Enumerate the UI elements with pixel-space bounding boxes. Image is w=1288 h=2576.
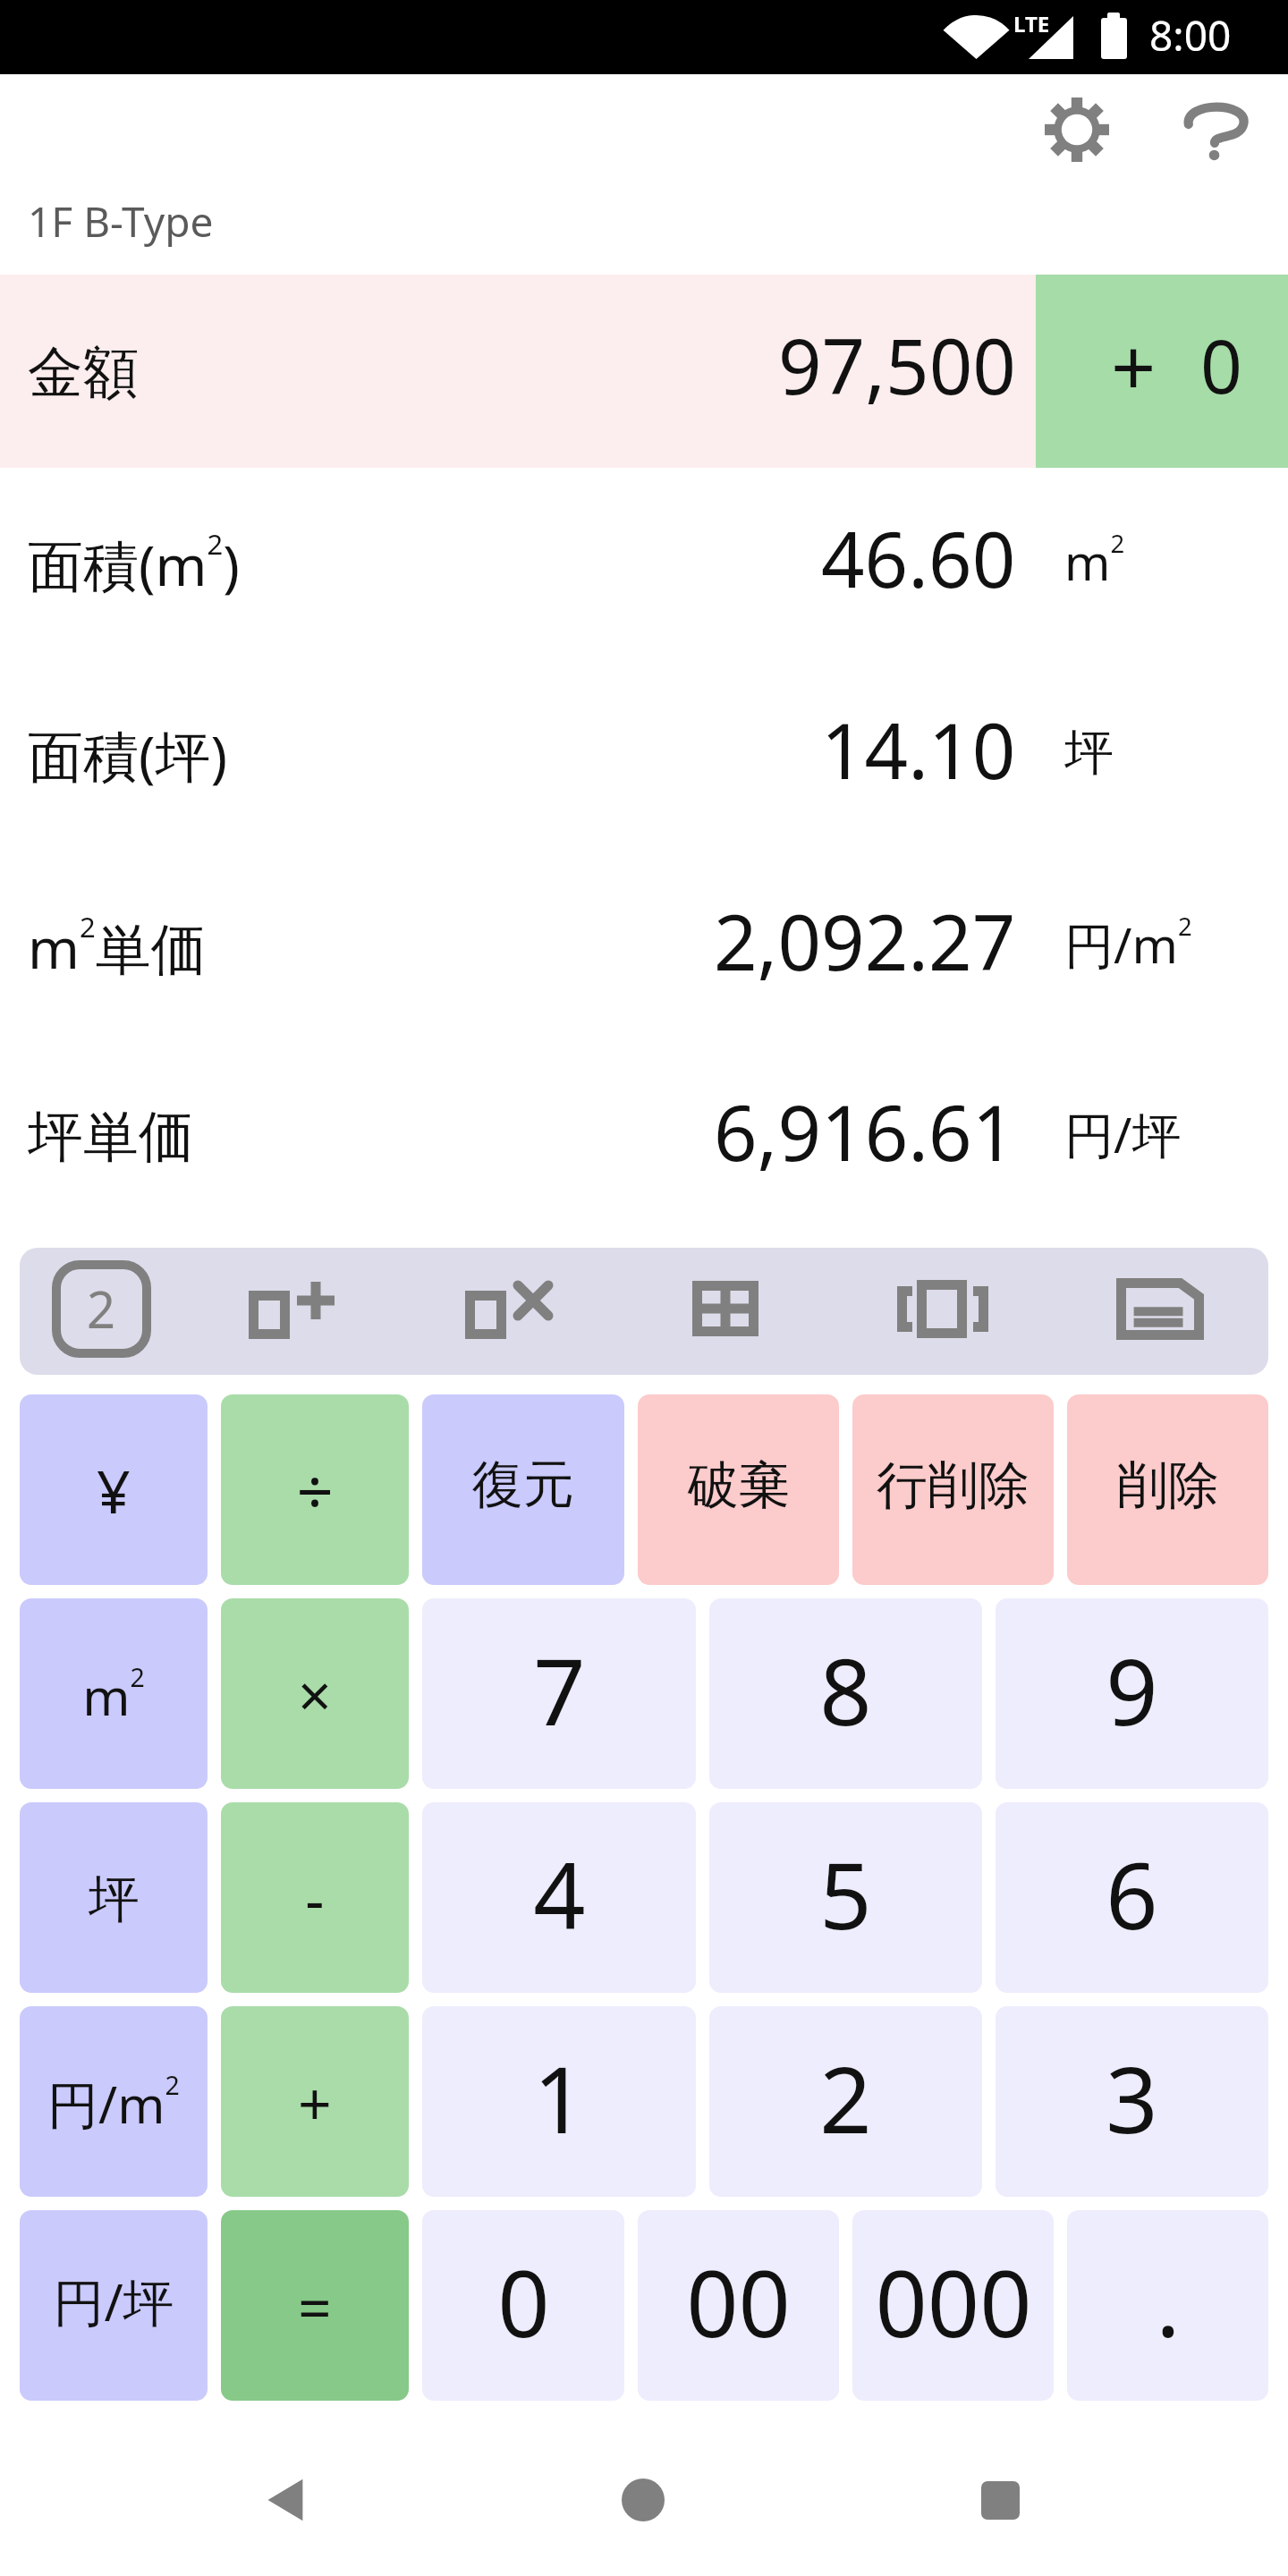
button[interactable]: Add page (183, 1248, 400, 1375)
staticText: 1 (533, 2036, 586, 2160)
staticText: m2単価 (28, 908, 207, 985)
button[interactable]: 8 (709, 1598, 982, 1789)
staticText: - (305, 1858, 325, 1938)
button[interactable]: 破棄 (638, 1394, 839, 1585)
staticText: LTE (1013, 9, 1050, 38)
staticText: 3 (1106, 2036, 1158, 2160)
staticText: 円/m2 (47, 2068, 180, 2139)
staticText: 14.10 (821, 698, 1016, 801)
staticText: 2 (819, 2036, 872, 2160)
button[interactable]: 1 (422, 2006, 696, 2197)
staticText: 000 (875, 2240, 1032, 2364)
staticText: 円/m2 (1064, 910, 1192, 978)
button[interactable]: 削除 (1067, 1394, 1268, 1585)
staticText: 1F B-Type (28, 193, 214, 250)
staticText: 6 (1106, 1832, 1158, 1956)
button[interactable]: 9 (996, 1598, 1268, 1789)
staticText: 破棄 (688, 1453, 790, 1518)
staticText: 6,916.61 (714, 1080, 1016, 1183)
button[interactable]: Help (1165, 74, 1264, 185)
button[interactable]: Home (580, 2415, 706, 2576)
button[interactable]: 3 (996, 2006, 1268, 2197)
staticText: 8:00 (1149, 7, 1232, 64)
button[interactable]: 4 (422, 1802, 696, 1993)
staticText: 削除 (1117, 1453, 1219, 1518)
button[interactable]: ¥ (20, 1394, 208, 1585)
button[interactable]: 円/m2 (20, 2006, 208, 2197)
staticText: m2 (82, 1660, 145, 1731)
button[interactable]: Back (225, 2415, 350, 2576)
button[interactable]: m2単価 (0, 851, 1288, 1041)
button[interactable]: ÷ (221, 1394, 409, 1585)
button[interactable]: m2 (20, 1598, 208, 1789)
staticText: 9 (1106, 1628, 1158, 1752)
button[interactable]: 行削除 (852, 1394, 1054, 1585)
button[interactable]: 6 (996, 1802, 1268, 1993)
button[interactable]: 2 (709, 2006, 982, 2197)
button[interactable]: 面積(m2) (0, 468, 1288, 659)
button[interactable]: = (221, 2210, 409, 2401)
button[interactable]: Page width (834, 1248, 1051, 1375)
staticText: = (298, 2266, 332, 2346)
button[interactable]: Recents (937, 2415, 1063, 2576)
button[interactable]: 00 (638, 2210, 839, 2401)
button[interactable]: + (221, 2006, 409, 2197)
staticText: 4 (533, 1832, 586, 1956)
button[interactable]: Delete page (400, 1248, 616, 1375)
staticText: 97,500 (778, 313, 1016, 417)
button[interactable]: 0 (422, 2210, 624, 2401)
button[interactable]: 7 (422, 1598, 696, 1789)
staticText: ¥ (97, 1450, 131, 1530)
staticText: + (298, 2062, 332, 2142)
staticText: 坪 (1064, 722, 1114, 784)
staticText: 復元 (472, 1453, 574, 1517)
button[interactable]: 円/坪 (20, 2210, 208, 2401)
button[interactable]: Grid view (616, 1248, 834, 1375)
button[interactable]: + (1036, 275, 1288, 468)
staticText: 0 (1200, 315, 1242, 415)
staticText: 2,092.27 (714, 889, 1016, 993)
button[interactable]: 5 (709, 1802, 982, 1993)
button[interactable]: Memo (1051, 1248, 1268, 1375)
staticText: 46.60 (821, 506, 1016, 610)
staticText: 円/坪 (53, 2267, 174, 2336)
button[interactable]: - (221, 1802, 409, 1993)
button[interactable]: 金額 (0, 275, 1036, 468)
button[interactable]: Settings (1028, 74, 1126, 185)
button[interactable]: × (221, 1598, 409, 1789)
button[interactable]: 面積(坪) (0, 659, 1288, 851)
staticText: 8 (819, 1628, 872, 1752)
staticText: 坪単価 (28, 1102, 194, 1172)
staticText: + (1111, 312, 1157, 419)
staticText: ÷ (296, 1446, 334, 1534)
button[interactable]: 坪 (20, 1802, 208, 1993)
staticText: 円/坪 (1064, 1100, 1182, 1167)
staticText: 金額 (28, 338, 139, 408)
staticText: m2 (1064, 527, 1125, 595)
button[interactable]: . (1067, 2210, 1268, 2401)
staticText: . (1156, 2240, 1181, 2364)
staticText: 7 (533, 1628, 586, 1752)
staticText: 2 (87, 1275, 116, 1343)
button[interactable]: Sheet 2 (20, 1248, 183, 1375)
staticText: 0 (497, 2240, 550, 2364)
staticText: 5 (819, 1832, 872, 1956)
staticText: 坪 (89, 1868, 140, 1932)
staticText: 00 (686, 2240, 791, 2364)
staticText: 行削除 (877, 1453, 1030, 1518)
button[interactable]: 復元 (422, 1394, 624, 1585)
staticText: 面積(坪) (28, 717, 228, 793)
staticText: × (298, 1654, 332, 1734)
button[interactable]: 坪単価 (0, 1041, 1288, 1232)
button[interactable]: 000 (852, 2210, 1054, 2401)
staticText: 面積(m2) (28, 525, 240, 602)
